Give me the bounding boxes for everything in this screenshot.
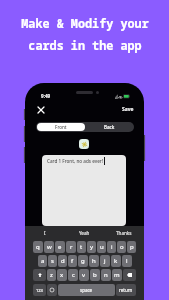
button[interactable]: j xyxy=(100,255,110,267)
staticText: h xyxy=(92,257,96,265)
staticText: Yeah xyxy=(79,230,90,236)
button[interactable]: h xyxy=(89,255,99,267)
button[interactable]: q xyxy=(33,241,43,253)
staticText: z xyxy=(50,271,53,279)
staticText: Back xyxy=(104,124,115,130)
button[interactable]: z xyxy=(47,269,56,281)
staticText: i xyxy=(111,243,113,251)
button[interactable]: Yeah xyxy=(64,226,104,239)
button[interactable]: return xyxy=(116,284,136,296)
staticText: q xyxy=(36,243,40,251)
staticText: Thanks xyxy=(116,230,132,236)
staticText: x xyxy=(60,271,64,279)
button[interactable]: I xyxy=(25,226,64,239)
button[interactable]: k xyxy=(111,255,121,267)
button[interactable]: Shift xyxy=(33,269,46,281)
button[interactable]: g xyxy=(78,255,88,267)
button[interactable]: o xyxy=(117,241,126,253)
staticText: return xyxy=(119,287,133,293)
staticText: I xyxy=(44,230,46,236)
button[interactable]: l xyxy=(122,255,132,267)
button[interactable]: Close xyxy=(34,103,47,116)
button[interactable]: x xyxy=(57,269,67,281)
staticText: d xyxy=(61,257,65,265)
staticText: 123 xyxy=(36,288,43,293)
button[interactable]: v xyxy=(79,269,89,281)
staticText: j xyxy=(104,257,106,265)
staticText: f xyxy=(71,257,74,265)
staticText: s xyxy=(51,257,54,265)
button[interactable]: Emoji xyxy=(47,284,57,296)
staticText: e xyxy=(58,243,62,251)
staticText: k xyxy=(114,257,118,265)
staticText: 9:49 xyxy=(41,93,51,99)
button[interactable]: space xyxy=(58,284,115,296)
staticText: v xyxy=(82,271,86,279)
staticText: u xyxy=(100,243,104,251)
staticText: Save xyxy=(122,106,134,113)
button[interactable]: m xyxy=(112,269,122,281)
button[interactable]: i xyxy=(107,241,116,253)
staticText: space xyxy=(80,287,93,293)
button[interactable]: b xyxy=(90,269,100,281)
staticText: c xyxy=(72,271,75,279)
button[interactable]: s xyxy=(48,255,57,267)
button[interactable]: Backspace xyxy=(123,269,136,281)
staticText: m xyxy=(114,271,120,279)
staticText: a xyxy=(41,257,45,265)
button[interactable]: Add media xyxy=(79,139,89,149)
staticText: r xyxy=(70,243,73,251)
button[interactable]: w xyxy=(44,241,54,253)
staticText: w xyxy=(47,243,52,251)
button[interactable]: u xyxy=(97,241,106,253)
staticText: g xyxy=(81,257,85,265)
button[interactable]: r xyxy=(66,241,76,253)
button[interactable]: 123 xyxy=(33,284,46,296)
button[interactable]: a xyxy=(38,255,47,267)
staticText: Card 1 Front, no ads ever! xyxy=(47,158,104,164)
staticText: n xyxy=(104,271,108,279)
button[interactable]: t xyxy=(77,241,86,253)
staticText: p xyxy=(130,243,134,251)
button[interactable]: f xyxy=(68,255,77,267)
staticText: b xyxy=(93,271,97,279)
button[interactable]: Back xyxy=(85,123,133,131)
staticText: t xyxy=(80,243,83,251)
staticText: o xyxy=(120,243,124,251)
button[interactable]: c xyxy=(68,269,78,281)
staticText: l xyxy=(126,257,128,265)
button[interactable]: e xyxy=(55,241,65,253)
button[interactable]: Save xyxy=(119,104,137,114)
button[interactable]: y xyxy=(87,241,96,253)
button[interactable]: Front xyxy=(37,123,85,131)
staticText: cards in the app xyxy=(28,37,142,53)
staticText: Make & Modify your xyxy=(21,15,149,31)
button[interactable]: p xyxy=(127,241,136,253)
button[interactable]: d xyxy=(58,255,67,267)
button[interactable]: Thanks xyxy=(104,226,144,239)
button[interactable]: n xyxy=(101,269,111,281)
staticText: y xyxy=(90,243,94,251)
staticText: Front xyxy=(55,124,67,130)
